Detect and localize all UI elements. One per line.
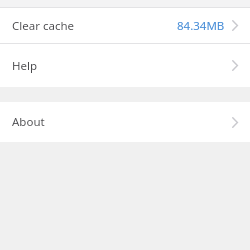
staticText: About [12, 114, 231, 130]
button[interactable]: Help [0, 44, 250, 87]
button[interactable]: About [0, 102, 250, 142]
button[interactable]: Clear cache [0, 8, 250, 43]
staticText: Help [12, 58, 231, 74]
staticText: Clear cache [12, 18, 177, 34]
staticText: 84.34MB [177, 18, 225, 34]
